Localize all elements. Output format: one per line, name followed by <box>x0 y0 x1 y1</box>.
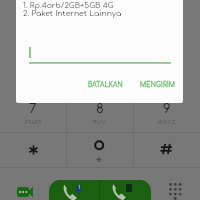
staticText: 1 <box>77 185 82 191</box>
button[interactable]: MENGIRIM <box>137 77 179 93</box>
button[interactable]: Call with SIM 2 <box>100 180 151 200</box>
button[interactable]: Zero <box>67 133 133 167</box>
button[interactable]: 7 <box>0 98 66 132</box>
staticText: 1. Rp.4orb/2GB+5GB 4G <box>23 1 114 10</box>
button[interactable]: 9 <box>134 98 200 132</box>
staticText: 9 <box>163 102 171 116</box>
button[interactable]: 8 <box>67 98 133 132</box>
staticText: BATALKAN <box>88 82 123 89</box>
staticText: TUV <box>93 119 107 125</box>
staticText: WXYZ <box>158 119 176 125</box>
button[interactable]: Pound <box>134 133 200 167</box>
staticText: MENGIRIM <box>140 82 176 89</box>
staticText: 8 <box>96 102 104 116</box>
staticText: 2. Paket Internet Lainnya <box>23 9 122 18</box>
button[interactable]: BATALKAN <box>84 77 126 93</box>
button[interactable]: Dialpad <box>168 182 184 198</box>
button[interactable]: Call with SIM 1 <box>49 180 99 200</box>
button[interactable]: Video call <box>17 185 33 200</box>
button[interactable]: Star <box>0 133 66 167</box>
staticText: 7 <box>29 102 37 116</box>
staticText: PQRS <box>25 119 42 125</box>
